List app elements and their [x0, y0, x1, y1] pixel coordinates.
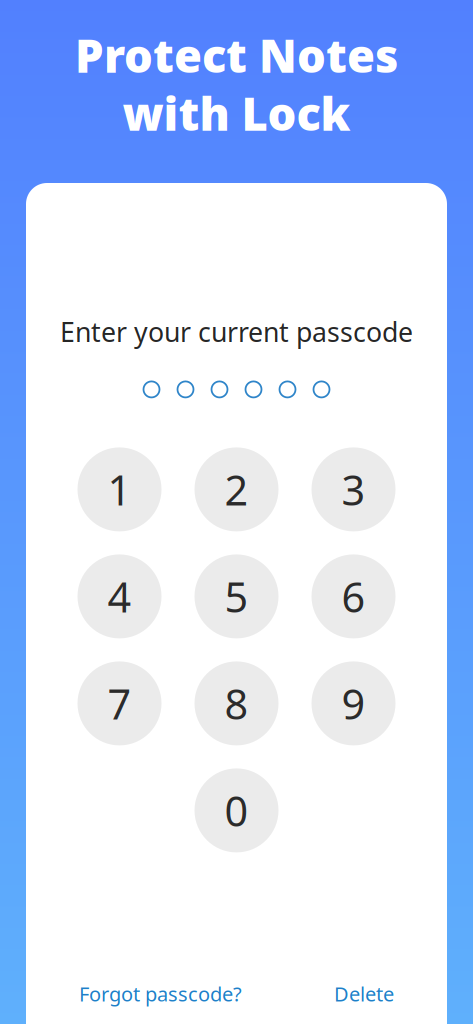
staticText: 3: [341, 462, 365, 517]
staticText: 1: [107, 462, 131, 517]
button[interactable]: 7: [77, 661, 161, 745]
button[interactable]: 8: [194, 661, 278, 745]
button[interactable]: 2: [194, 447, 278, 531]
staticText: Delete: [334, 980, 394, 1007]
staticText: 8: [224, 676, 248, 731]
button[interactable]: 3: [311, 447, 395, 531]
button[interactable]: Forgot passcode?: [79, 972, 242, 1015]
staticText: Protect Notes: [75, 25, 398, 85]
staticText: 7: [107, 676, 131, 731]
button[interactable]: 1: [77, 447, 161, 531]
button[interactable]: 6: [311, 554, 395, 638]
staticText: 5: [224, 569, 248, 624]
staticText: 9: [341, 676, 365, 731]
staticText: Enter your current passcode: [60, 314, 413, 349]
staticText: 4: [107, 569, 131, 624]
staticText: 0: [224, 783, 248, 838]
button[interactable]: Delete: [334, 972, 394, 1015]
staticText: 2: [224, 462, 248, 517]
staticText: with Lock: [122, 83, 350, 143]
button[interactable]: 9: [311, 661, 395, 745]
staticText: Forgot passcode?: [79, 980, 242, 1007]
button[interactable]: 5: [194, 554, 278, 638]
button[interactable]: 4: [77, 554, 161, 638]
staticText: 6: [341, 569, 365, 624]
button[interactable]: 0: [194, 768, 278, 852]
